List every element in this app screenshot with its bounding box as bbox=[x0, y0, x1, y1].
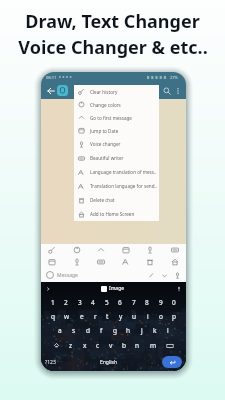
staticText: Clear history bbox=[90, 89, 118, 95]
staticText: g bbox=[113, 326, 117, 335]
staticText: 9 bbox=[159, 298, 163, 307]
staticText: Translation language for send.. bbox=[90, 183, 157, 189]
staticText: m bbox=[150, 341, 157, 350]
button[interactable]: Add to Home Screen bbox=[74, 207, 159, 221]
staticText: 1 bbox=[51, 298, 55, 307]
staticText: h bbox=[126, 326, 131, 335]
staticText: Message bbox=[57, 272, 78, 279]
staticText: d bbox=[86, 326, 90, 335]
button[interactable]: Search bbox=[161, 85, 172, 96]
button[interactable]: Tool 4 bbox=[122, 246, 130, 254]
staticText: b bbox=[122, 341, 126, 350]
button[interactable]: Profile bbox=[57, 85, 68, 96]
staticText: Draw, Text Changer bbox=[25, 9, 200, 34]
button[interactable]: Tool 1 bbox=[48, 246, 56, 254]
staticText: 5 bbox=[105, 298, 109, 307]
staticText: 3 bbox=[78, 298, 82, 307]
button[interactable]: Tool 6 bbox=[171, 246, 179, 254]
staticText: Jump to Date bbox=[90, 128, 119, 134]
button[interactable]: Go to first message bbox=[74, 111, 159, 124]
staticText: w bbox=[64, 312, 70, 321]
button[interactable]: Beautiful writer bbox=[74, 151, 159, 165]
button[interactable]: Tool 12 bbox=[171, 258, 179, 266]
button[interactable]: Delete chat bbox=[74, 193, 159, 207]
staticText: 7 bbox=[132, 298, 136, 307]
staticText: x bbox=[83, 341, 87, 350]
staticText: Language translation of mess.. bbox=[90, 169, 157, 175]
button[interactable]: Tool 11 bbox=[146, 258, 154, 266]
button[interactable]: Change colors bbox=[74, 98, 159, 111]
staticText: 2 bbox=[64, 298, 68, 307]
button[interactable]: Tool 10 bbox=[122, 258, 130, 266]
staticText: Voice changer bbox=[90, 141, 121, 147]
staticText: n bbox=[135, 341, 140, 350]
button[interactable]: More options bbox=[172, 85, 183, 96]
button[interactable]: Clear history bbox=[74, 85, 159, 98]
staticText: 6 bbox=[118, 298, 122, 307]
staticText: a bbox=[58, 326, 62, 335]
staticText: 4 bbox=[91, 298, 95, 307]
staticText: p bbox=[172, 312, 176, 321]
button[interactable]: Enter bbox=[162, 356, 182, 368]
button[interactable]: Tool 3 bbox=[97, 246, 105, 254]
staticText: r bbox=[94, 312, 97, 321]
staticText: 0 bbox=[172, 298, 176, 307]
staticText: s bbox=[72, 326, 76, 335]
staticText: Delete chat bbox=[90, 197, 115, 203]
staticText: ?123 bbox=[45, 359, 56, 366]
staticText: u bbox=[132, 312, 137, 321]
staticText: c bbox=[96, 341, 100, 350]
button[interactable]: Tool 8 bbox=[73, 258, 81, 266]
staticText: q bbox=[51, 312, 55, 321]
staticText: 27% bbox=[170, 75, 178, 80]
staticText: English bbox=[100, 359, 118, 366]
staticText: 08:11 bbox=[46, 75, 57, 80]
button[interactable]: Tool 9 bbox=[97, 258, 105, 266]
staticText: Image bbox=[109, 285, 125, 292]
staticText: l bbox=[167, 326, 169, 335]
button[interactable]: Back bbox=[45, 85, 56, 96]
button[interactable]: Tool 5 bbox=[146, 246, 154, 254]
staticText: t bbox=[106, 312, 109, 321]
button[interactable]: Tool 2 bbox=[73, 246, 81, 254]
staticText: j bbox=[141, 326, 143, 335]
staticText: z bbox=[69, 341, 73, 350]
button[interactable]: Tool 7 bbox=[48, 258, 56, 266]
staticText: Go to first message bbox=[90, 115, 132, 121]
staticText: f bbox=[100, 326, 103, 335]
staticText: Add to Home Screen bbox=[90, 211, 135, 217]
staticText: i bbox=[147, 312, 149, 321]
staticText: Beautiful writer bbox=[90, 155, 124, 161]
staticText: 8 bbox=[145, 298, 149, 307]
staticText: k bbox=[153, 326, 157, 335]
button[interactable]: Voice changer bbox=[74, 137, 159, 151]
staticText: Change colors bbox=[90, 102, 121, 108]
staticText: o bbox=[159, 312, 163, 321]
button[interactable]: Jump to Date bbox=[74, 124, 159, 137]
staticText: v bbox=[109, 341, 113, 350]
button[interactable]: Language translation of mess.. bbox=[74, 165, 159, 179]
staticText: e bbox=[80, 312, 84, 321]
staticText: y bbox=[119, 312, 123, 321]
button[interactable]: Translation language for send.. bbox=[74, 179, 159, 193]
staticText: Voice Changer & etc.. bbox=[18, 35, 208, 60]
